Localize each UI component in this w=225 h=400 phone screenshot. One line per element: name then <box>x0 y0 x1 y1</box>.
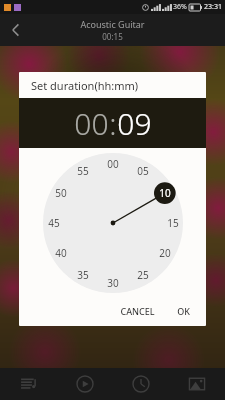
button[interactable]: CANCEL <box>112 301 163 321</box>
staticText: 30 <box>107 276 119 290</box>
staticText: 36% <box>173 2 187 12</box>
button[interactable]: Play <box>57 368 113 400</box>
staticText: Acoustic Guitar <box>80 18 145 30</box>
staticText: 10 <box>159 186 171 200</box>
button[interactable]: Artwork <box>169 368 225 400</box>
staticText: 35 <box>77 268 89 282</box>
staticText: 15 <box>167 216 179 230</box>
staticText: 50 <box>55 186 67 200</box>
staticText: Set duration(hh:mm) <box>31 78 139 93</box>
staticText: : <box>109 103 117 144</box>
staticText: 00:15 <box>102 31 123 42</box>
staticText: 25 <box>137 268 149 282</box>
button[interactable]: 09 <box>117 103 152 144</box>
button[interactable]: Playlist <box>0 368 57 400</box>
staticText: 23:31 <box>204 2 222 12</box>
button[interactable]: Timer <box>113 368 169 400</box>
staticText: 05 <box>137 164 149 178</box>
staticText: 00 <box>107 157 119 171</box>
staticText: 40 <box>55 246 67 260</box>
staticText: OK <box>177 305 190 317</box>
staticText: 09 <box>117 103 152 144</box>
staticText: 20 <box>159 246 171 260</box>
staticText: 55 <box>77 164 89 178</box>
staticText: 00 <box>74 103 109 144</box>
staticText: 45 <box>48 216 60 230</box>
staticText: CANCEL <box>120 305 155 317</box>
button[interactable]: OK <box>169 301 198 321</box>
button[interactable]: 00 <box>74 103 109 144</box>
button[interactable]: Back <box>0 14 32 46</box>
